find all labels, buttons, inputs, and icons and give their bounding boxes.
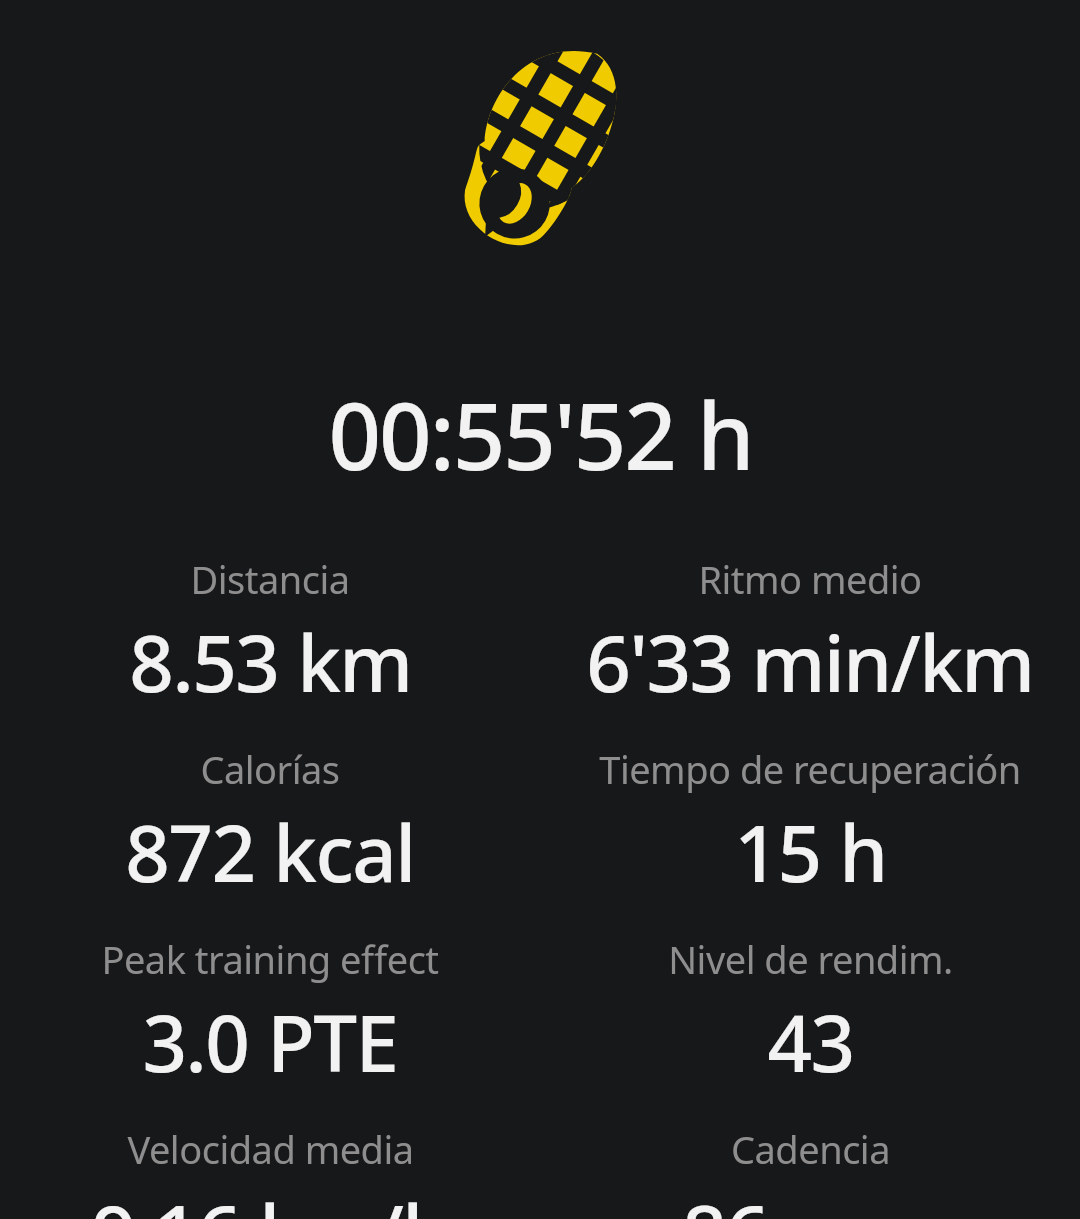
staticText: Nivel de rendim. bbox=[668, 933, 953, 985]
staticText: Velocidad media bbox=[127, 1123, 414, 1175]
button[interactable]: Running activity bbox=[404, 20, 676, 272]
button[interactable]: Nivel de rendim. bbox=[540, 933, 1080, 1095]
staticText: 00:55'52 h bbox=[328, 372, 753, 497]
button[interactable]: Velocidad media bbox=[0, 1123, 540, 1219]
staticText: 43 bbox=[767, 989, 854, 1095]
staticText: 872 kcal bbox=[125, 799, 415, 905]
button[interactable]: Calorías bbox=[0, 743, 540, 905]
button[interactable]: Tiempo de recuperación bbox=[540, 743, 1080, 905]
button[interactable]: Peak training effect bbox=[0, 933, 540, 1095]
button[interactable]: Ritmo medio bbox=[540, 553, 1080, 715]
staticText: 8.53 km bbox=[129, 609, 412, 715]
staticText: 15 h bbox=[734, 799, 887, 905]
staticText: 86 rpm bbox=[682, 1179, 938, 1219]
staticText: 3.0 PTE bbox=[142, 989, 398, 1095]
staticText: Cadencia bbox=[731, 1123, 890, 1175]
staticText: 9.16 km/h bbox=[91, 1179, 450, 1219]
staticText: Distancia bbox=[190, 553, 350, 605]
staticText: Tiempo de recuperación bbox=[599, 743, 1021, 795]
staticText: 6'33 min/km bbox=[586, 609, 1034, 715]
button[interactable]: Distancia bbox=[0, 553, 540, 715]
staticText: Peak training effect bbox=[101, 933, 439, 985]
button[interactable]: Cadencia bbox=[540, 1123, 1080, 1219]
staticText: Calorías bbox=[200, 743, 340, 795]
staticText: Ritmo medio bbox=[698, 553, 922, 605]
